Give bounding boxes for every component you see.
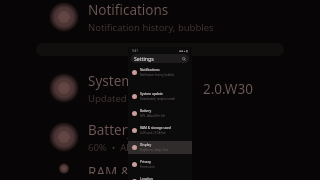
- staticText: Notifications: [140, 68, 160, 72]
- staticText: System upd: [88, 72, 163, 90]
- button[interactable]: Privacy: [128, 158, 192, 171]
- staticText: Permissions: [140, 165, 155, 169]
- button[interactable]: Display: [128, 141, 192, 154]
- staticText: Battery: [88, 121, 135, 139]
- staticText: Notification history, bubbles: [140, 73, 175, 77]
- staticText: ▪▪ ▴ ▮: [179, 49, 188, 53]
- button[interactable]: Notifications: [128, 66, 192, 79]
- button[interactable]: Location: [128, 175, 192, 180]
- staticText: 60% - About 8 hr left: [140, 114, 165, 118]
- staticText: 9:41: [132, 49, 138, 53]
- staticText: 2.0.W30: [203, 80, 253, 98]
- staticText: Downloaded, ready to install: [140, 97, 175, 101]
- staticText: System update: [140, 92, 163, 96]
- button[interactable]: System update: [128, 90, 192, 103]
- button[interactable]: Notifications: [0, 0, 320, 40]
- staticText: RAM & storage used: [140, 126, 171, 130]
- button[interactable]: RAM & stor: [0, 163, 320, 174]
- staticText: Privacy: [140, 160, 151, 164]
- staticText: Settings: [134, 55, 154, 62]
- button[interactable]: Settings: [131, 54, 189, 63]
- button[interactable]: RAM & storage used: [128, 124, 192, 137]
- staticText: Updated to: [88, 92, 141, 105]
- staticText: RAM & stor: [88, 163, 160, 174]
- other: Search settings: [182, 57, 186, 61]
- staticText: Notification history, bubbles: [88, 21, 214, 34]
- staticText: Notifications: [88, 1, 169, 19]
- staticText: Location: [140, 177, 154, 180]
- staticText: 60% • Abou: [88, 141, 144, 154]
- button[interactable]: Battery: [128, 107, 192, 120]
- staticText: Display: [140, 143, 152, 147]
- staticText: Brightness, Sleep, Font: [140, 148, 168, 152]
- staticText: 4.4% used - 8 GB free: [140, 131, 166, 135]
- button[interactable]: Battery: [0, 114, 320, 160]
- staticText: Battery: [140, 109, 152, 113]
- button[interactable]: System upd: [0, 65, 320, 111]
